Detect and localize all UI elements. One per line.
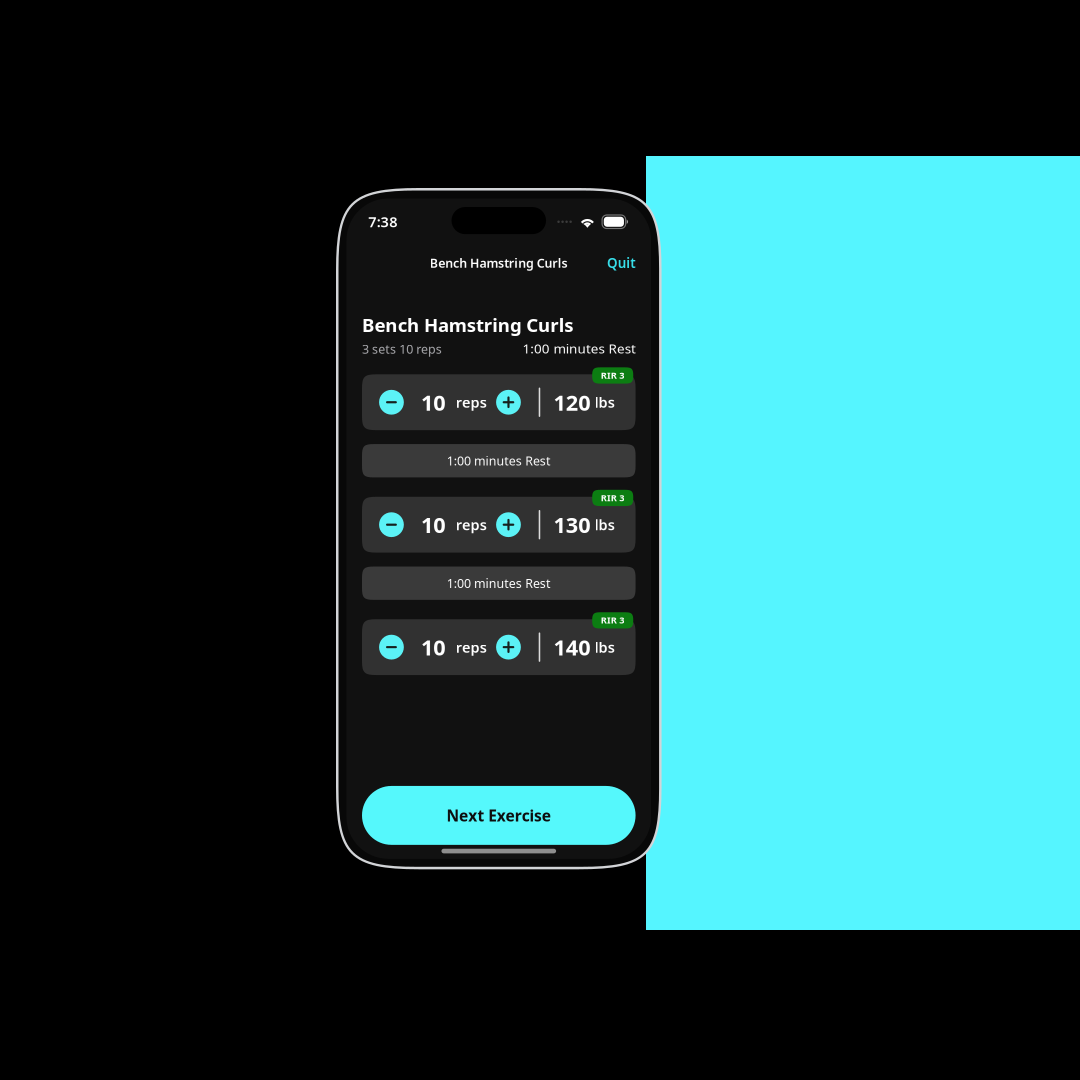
staticText: reps	[487, 449, 527, 474]
button[interactable]: 1:00 minutes Rest	[366, 673, 719, 716]
button[interactable]: 1:00 minutes Rest	[366, 515, 719, 558]
staticText: 7:38	[374, 216, 412, 241]
staticText: 10	[442, 601, 474, 638]
staticText: 140	[613, 759, 661, 796]
button[interactable]: 10	[366, 425, 719, 497]
button[interactable]: 10	[366, 583, 719, 655]
staticText: reps	[487, 765, 527, 790]
staticText: Bench Hamstring Curls	[366, 345, 639, 377]
staticText: 130	[613, 601, 661, 638]
staticText: 3 sets 10 reps	[366, 382, 469, 403]
staticText: 1:00 minutes Rest	[476, 526, 610, 547]
staticText: reps	[487, 607, 527, 632]
staticText: 1:00 minutes Rest	[573, 380, 719, 403]
staticText: 10	[442, 759, 474, 796]
staticText: 10	[442, 443, 474, 480]
button[interactable]: 10	[366, 741, 719, 813]
staticText: 120	[613, 443, 661, 480]
